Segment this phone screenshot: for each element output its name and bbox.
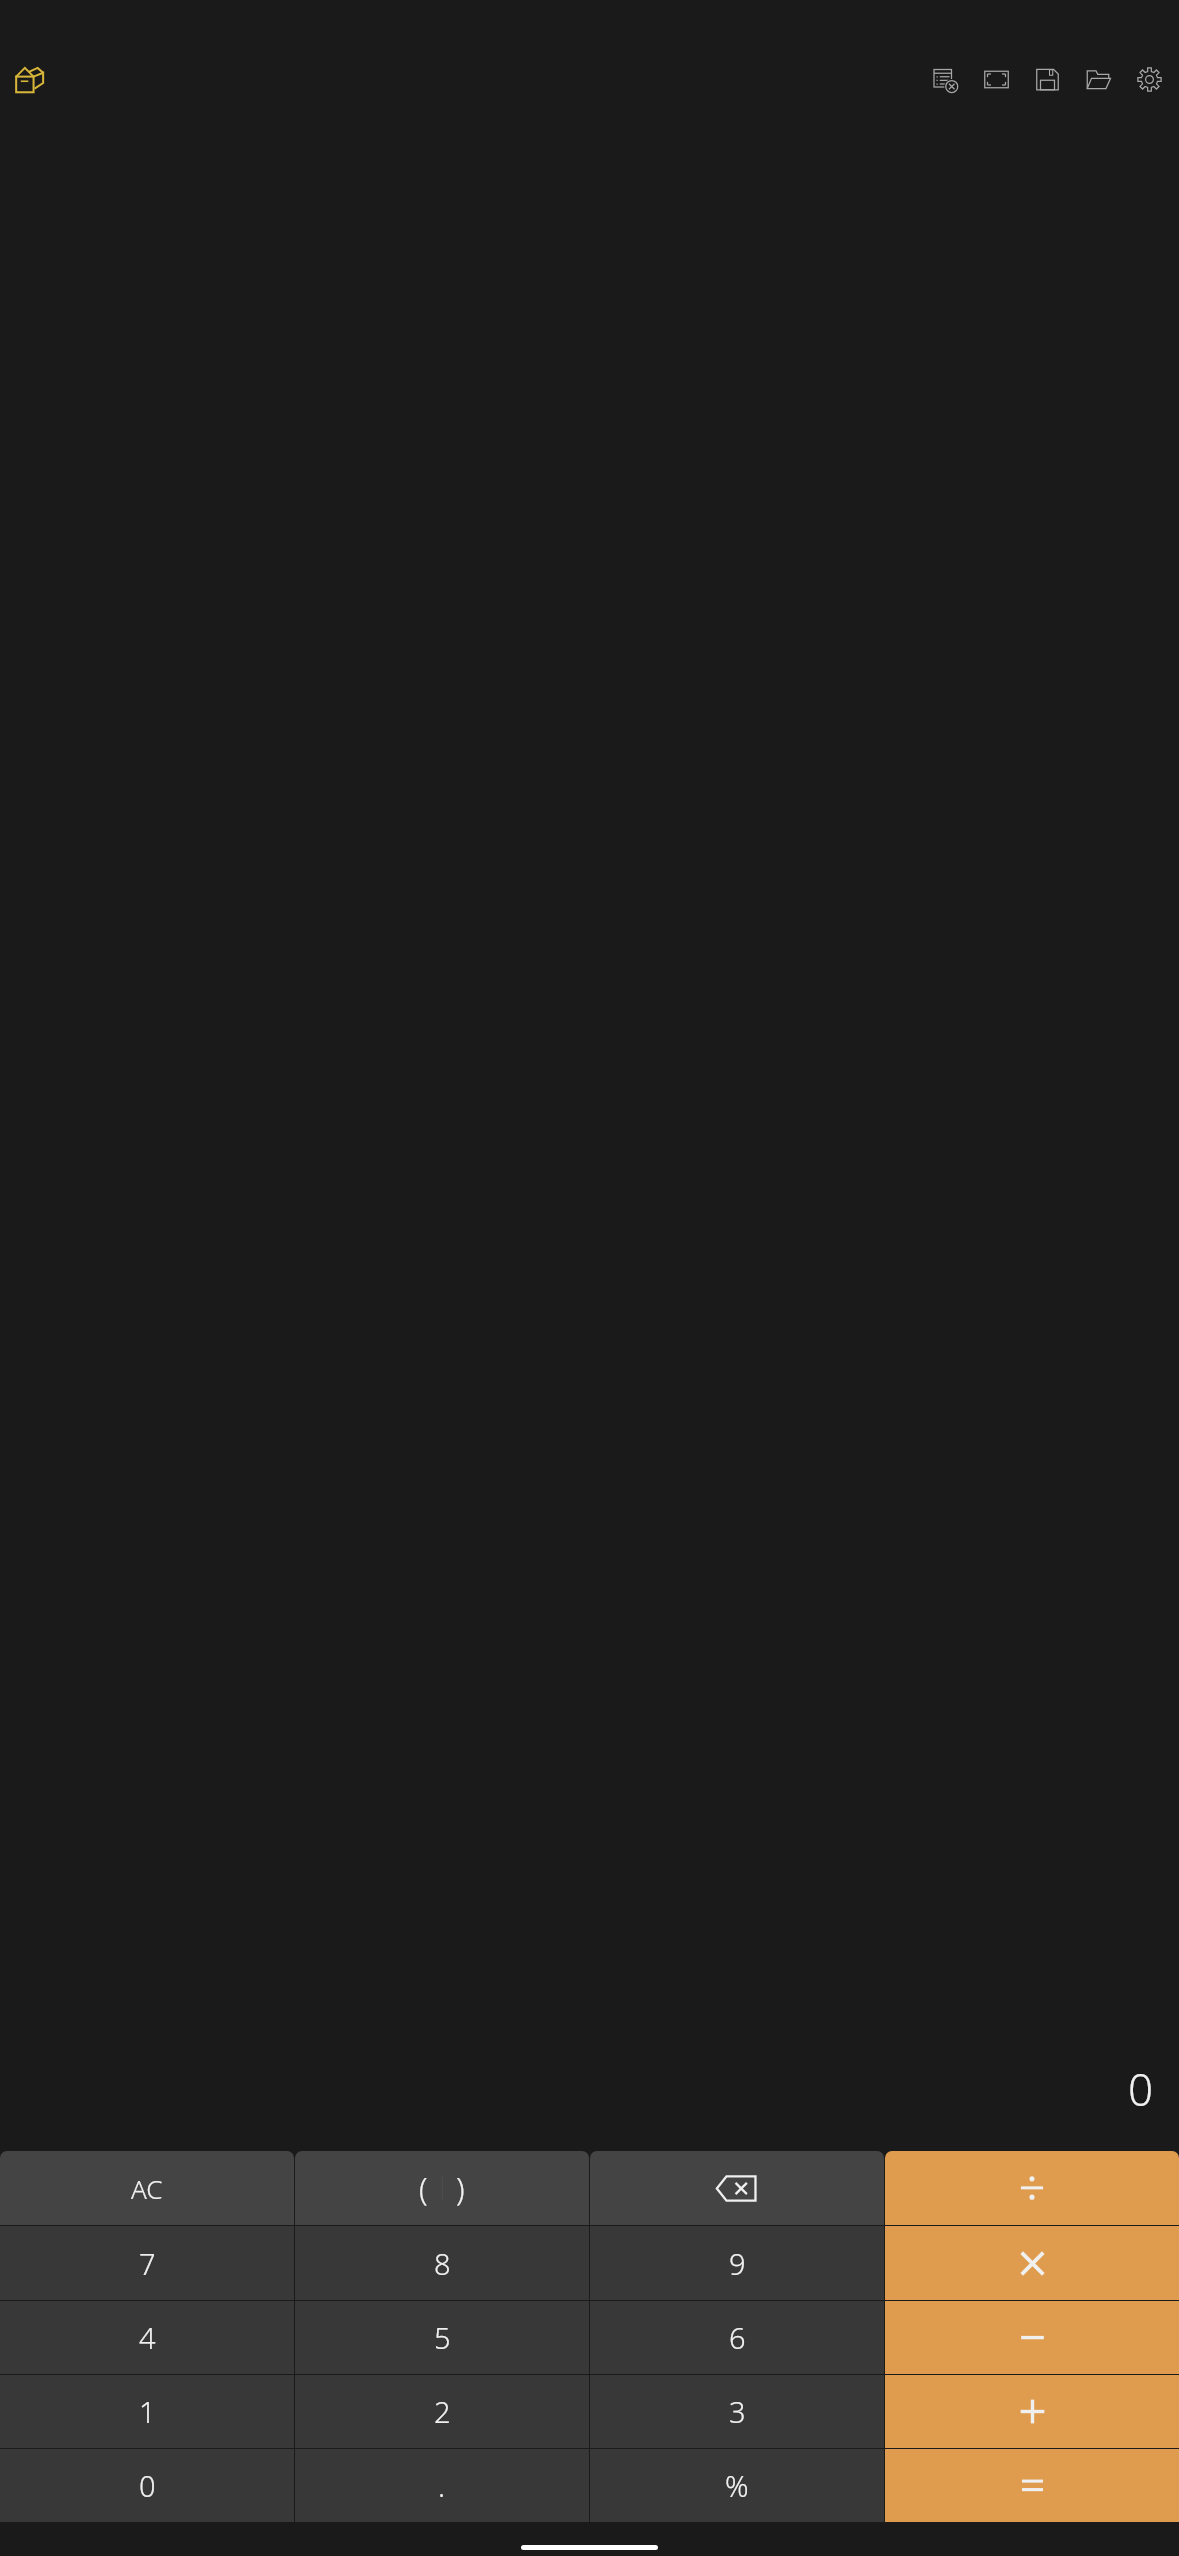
staticText: ) (456, 2167, 465, 2209)
button[interactable]: 7 (0, 2226, 294, 2300)
button[interactable]: AC (0, 2151, 294, 2225)
button[interactable]: Box logo (6, 56, 52, 102)
staticText: 6 (729, 2318, 746, 2357)
button[interactable]: 5 (295, 2301, 589, 2374)
button[interactable]: 1 (0, 2375, 294, 2448)
staticText: 4 (139, 2318, 156, 2357)
button[interactable]: Plus (885, 2375, 1179, 2448)
button[interactable]: Divide (885, 2151, 1179, 2225)
staticText: 9 (729, 2244, 746, 2283)
button[interactable]: Clear history (923, 57, 967, 101)
staticText: 0 (139, 2466, 156, 2505)
staticText: 0 (1128, 2059, 1154, 2119)
button[interactable]: 2 (295, 2375, 589, 2448)
button[interactable]: Save (1025, 57, 1069, 101)
staticText: 1 (139, 2392, 156, 2431)
staticText: ( (419, 2167, 428, 2209)
button[interactable]: Equals (885, 2449, 1179, 2522)
staticText: . (438, 2466, 446, 2505)
staticText: 2 (434, 2392, 451, 2431)
button[interactable]: Fullscreen (974, 57, 1018, 101)
button[interactable]: 9 (590, 2226, 884, 2300)
button[interactable]: 3 (590, 2375, 884, 2448)
button[interactable]: Minus (885, 2301, 1179, 2374)
staticText: % (725, 2466, 749, 2505)
button[interactable]: Settings (1127, 57, 1171, 101)
staticText: 3 (729, 2392, 746, 2431)
button[interactable]: Decimal point (295, 2449, 589, 2522)
button[interactable]: 4 (0, 2301, 294, 2374)
button[interactable]: Multiply (885, 2226, 1179, 2300)
button[interactable]: 6 (590, 2301, 884, 2374)
button[interactable]: Open file (1076, 57, 1120, 101)
staticText: 5 (434, 2318, 451, 2357)
button[interactable]: Parentheses (295, 2151, 589, 2225)
button[interactable]: 8 (295, 2226, 589, 2300)
button[interactable]: Percent (590, 2449, 884, 2522)
button[interactable]: 0 (0, 2449, 294, 2522)
staticText: 7 (139, 2244, 156, 2283)
staticText: AC (131, 2171, 163, 2206)
staticText: 8 (434, 2244, 451, 2283)
button[interactable]: Backspace (590, 2151, 884, 2225)
